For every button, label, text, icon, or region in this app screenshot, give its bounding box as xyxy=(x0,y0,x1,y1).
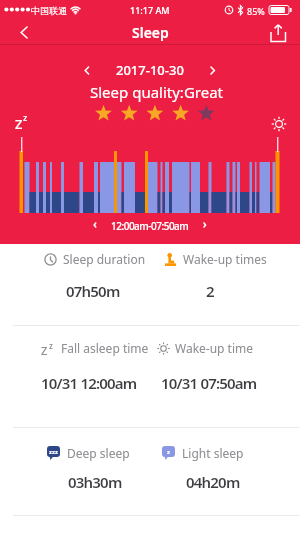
button[interactable]: 07h50m xyxy=(28,281,158,301)
button[interactable]: 03h30m xyxy=(30,472,160,492)
button[interactable]: 2 xyxy=(145,281,275,301)
button[interactable]: 10/31 12:00am xyxy=(16,373,161,393)
staticText: Sleep xyxy=(132,23,169,42)
staticText: Fall asleep time xyxy=(61,340,149,356)
staticText: Sleep duration xyxy=(63,251,146,267)
button[interactable]: Wake-up times xyxy=(150,251,280,267)
staticText: Sleep quality:Great xyxy=(90,82,223,102)
staticText: Deep sleep xyxy=(67,445,130,461)
staticText: Light sleep xyxy=(182,445,244,461)
staticText: 12:00am-07:50am xyxy=(111,219,189,231)
button[interactable]: z xyxy=(138,445,268,461)
button[interactable]: Sleep duration xyxy=(30,251,160,267)
staticText: 07h50m xyxy=(66,281,120,301)
staticText: Wake-up times xyxy=(183,251,267,267)
staticText: 10/31 12:00am xyxy=(41,373,137,393)
staticText: Z xyxy=(41,343,48,358)
staticText: z xyxy=(49,340,53,351)
button[interactable]: 2017-10-30 xyxy=(116,61,184,79)
staticText: 04h20m xyxy=(186,472,240,492)
staticText: zzz xyxy=(49,448,58,456)
button[interactable] xyxy=(8,20,40,45)
staticText: 11:17 AM xyxy=(130,4,170,16)
staticText: Wake-up time xyxy=(175,340,254,356)
button[interactable]: Wake-up time xyxy=(140,340,270,356)
staticText: 2017-10-30 xyxy=(116,61,184,79)
staticText: Z xyxy=(15,115,23,133)
staticText: 03h30m xyxy=(68,472,122,492)
button[interactable]: Z xyxy=(25,340,165,356)
button[interactable]: 10/31 07:50am xyxy=(136,373,281,393)
button[interactable] xyxy=(266,21,290,45)
staticText: 2 xyxy=(206,281,214,301)
staticText: z xyxy=(167,448,170,456)
staticText: 中国联通 xyxy=(31,5,67,16)
staticText: 85% xyxy=(247,5,265,17)
staticText: 10/31 07:50am xyxy=(161,373,257,393)
button[interactable]: 04h20m xyxy=(148,472,278,492)
button[interactable]: zzz xyxy=(23,445,153,461)
staticText: z xyxy=(23,111,28,123)
